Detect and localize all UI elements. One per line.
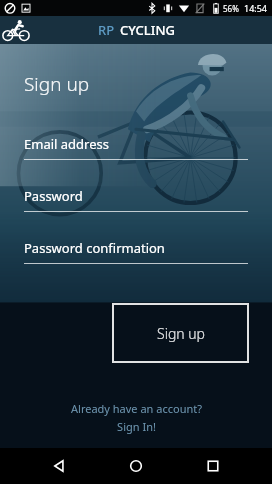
staticText: CYCLING — [120, 21, 175, 39]
staticText: Already have an account? — [71, 401, 202, 416]
button[interactable]: Password — [0, 177, 272, 212]
staticText: Sign up — [157, 324, 205, 343]
staticText: 14:54 — [244, 2, 268, 14]
button[interactable]: Sign up — [113, 304, 248, 362]
staticText: Sign up — [24, 71, 90, 97]
button[interactable]: Home — [118, 448, 154, 484]
staticText: RP — [98, 21, 115, 39]
staticText: Password confirmation — [24, 239, 165, 257]
button[interactable]: Recent apps — [195, 448, 231, 484]
button[interactable]: Email address — [0, 125, 272, 160]
staticText: Password — [24, 187, 83, 205]
staticText: Sign In! — [117, 419, 156, 434]
button[interactable]: Password confirmation — [0, 229, 272, 264]
button[interactable]: Back — [41, 448, 77, 484]
button[interactable]: Already have an account? — [0, 401, 272, 448]
staticText: Email address — [24, 135, 109, 153]
staticText: 56% — [223, 3, 239, 14]
button[interactable]: RP Cycling logo — [3, 17, 29, 43]
